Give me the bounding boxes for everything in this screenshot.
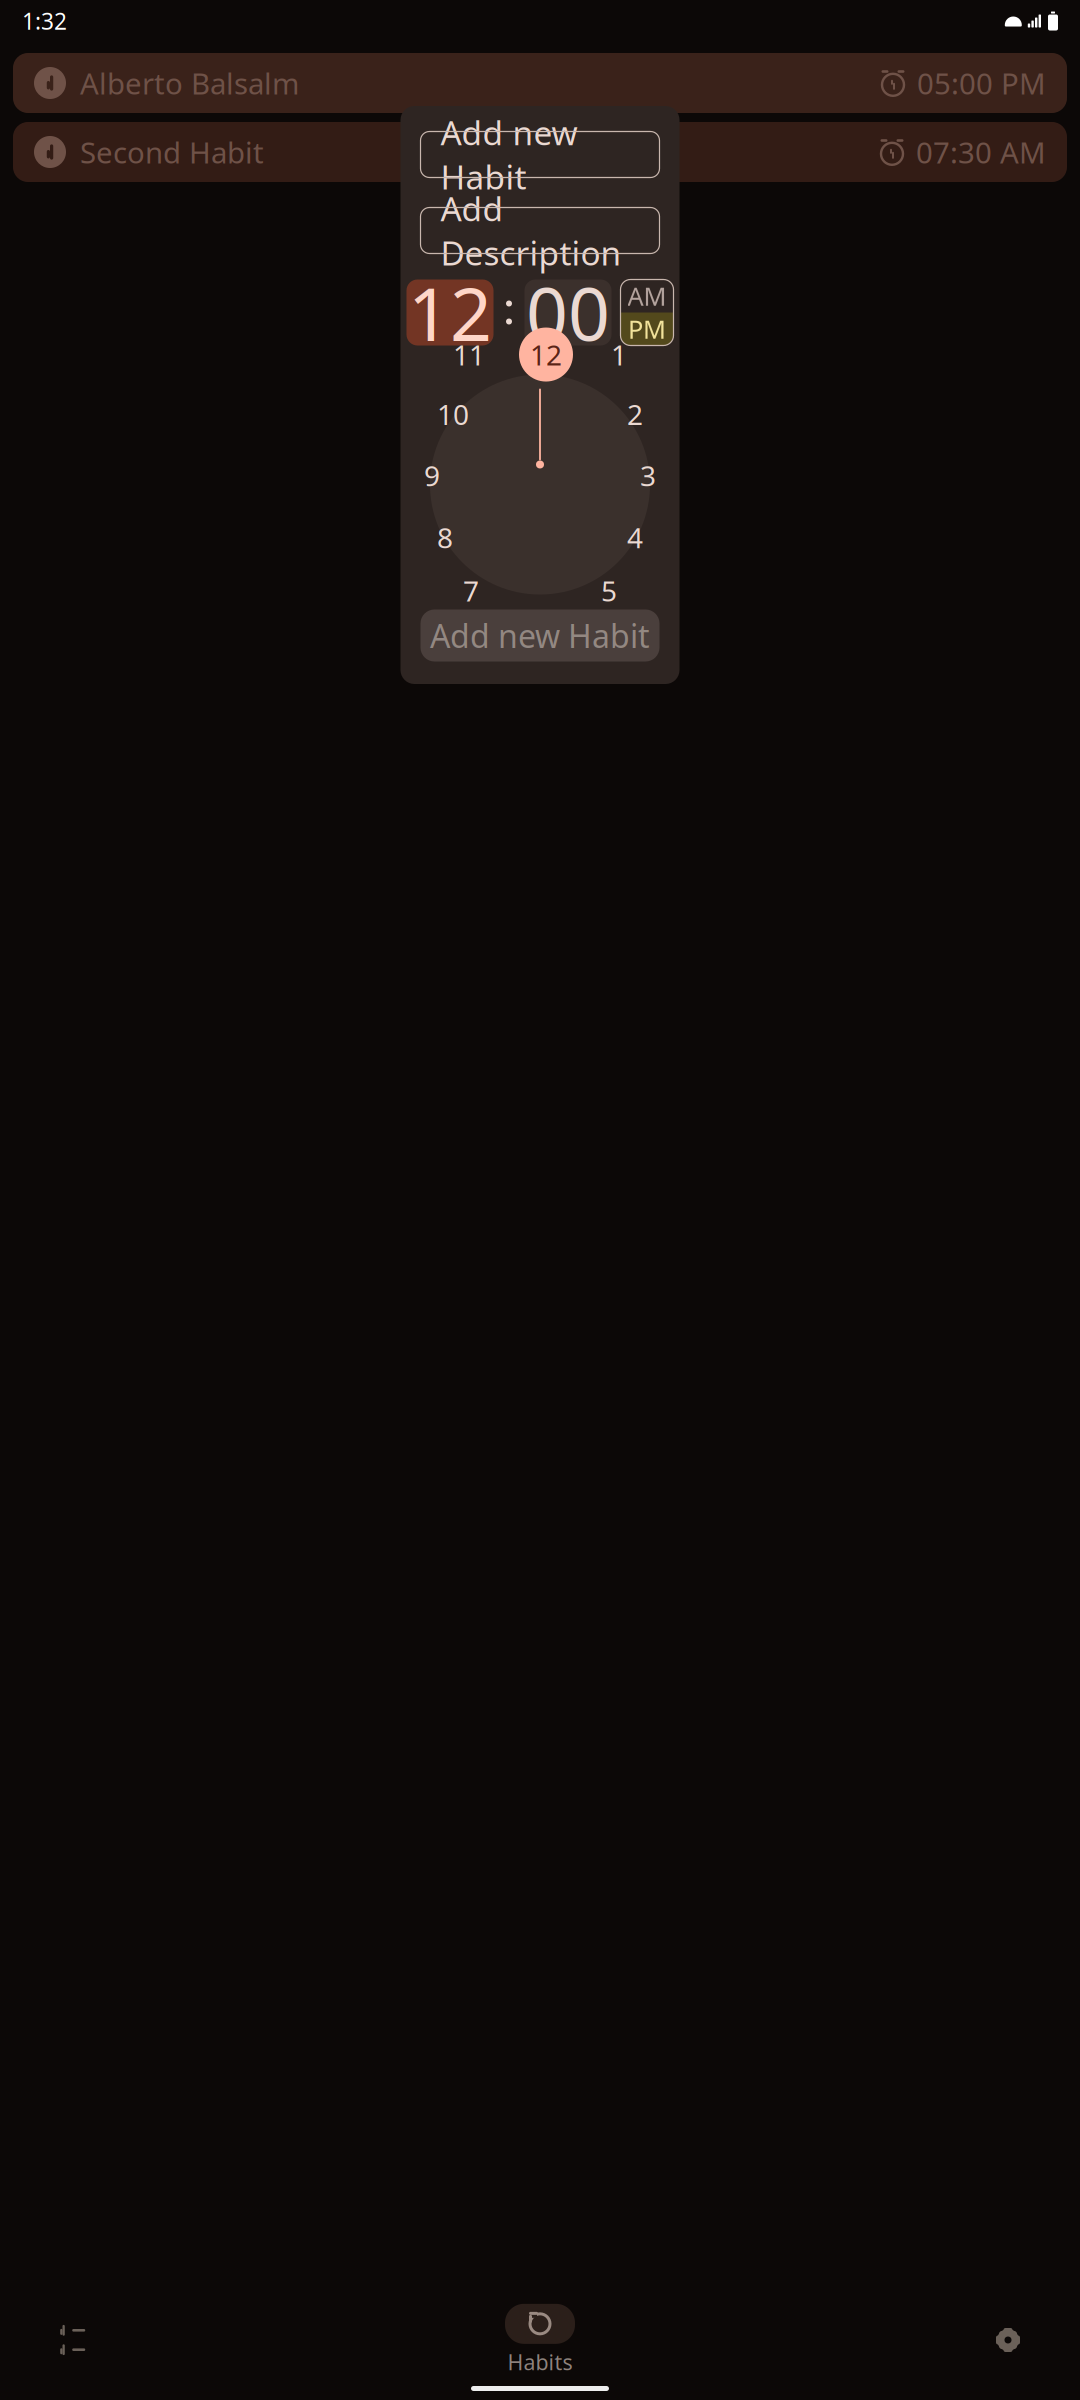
button[interactable]: Add new Habit (420, 609, 659, 661)
staticText: 5 (601, 572, 617, 609)
staticText: 07:30 AM (916, 132, 1046, 171)
staticText: Alberto Balsalm (80, 63, 299, 102)
button[interactable]: Add Description (420, 207, 659, 253)
button[interactable]: Alberto Balsalm (13, 53, 1067, 113)
staticText: 7 (463, 572, 479, 609)
staticText: 8 (437, 519, 453, 556)
button[interactable]: Settings (952, 2309, 1064, 2371)
staticText: Add new Habit (430, 614, 650, 657)
staticText: 6 (532, 609, 548, 646)
staticText: 11 (453, 336, 485, 373)
staticText: 1 (611, 336, 627, 373)
staticText: 3 (640, 457, 656, 494)
button[interactable]: 00 (524, 279, 611, 345)
button[interactable]: Second Habit (13, 122, 1067, 182)
staticText: Habits (507, 2348, 572, 2376)
button[interactable]: PM (620, 312, 673, 345)
button[interactable]: Habits (505, 2304, 575, 2376)
button[interactable]: AM (620, 279, 673, 312)
staticText: 2 (627, 395, 643, 433)
staticText: 12 (530, 336, 562, 373)
staticText: Add new Habit (440, 110, 577, 199)
staticText: PM (628, 312, 666, 346)
staticText: 1:32 (22, 6, 67, 36)
staticText: AM (627, 279, 666, 313)
staticText: Second Habit (80, 132, 264, 171)
staticText: 10 (437, 395, 469, 433)
staticText: 05:00 PM (917, 63, 1046, 102)
button[interactable]: Tasks (16, 2309, 128, 2371)
staticText: Add Description (440, 186, 621, 275)
staticText: 12 (408, 264, 492, 361)
button[interactable]: 12 (406, 279, 493, 345)
staticText: 4 (627, 519, 643, 556)
button[interactable]: Add new Habit (420, 131, 659, 177)
staticText: 00 (526, 264, 610, 361)
staticText: 9 (424, 457, 440, 494)
